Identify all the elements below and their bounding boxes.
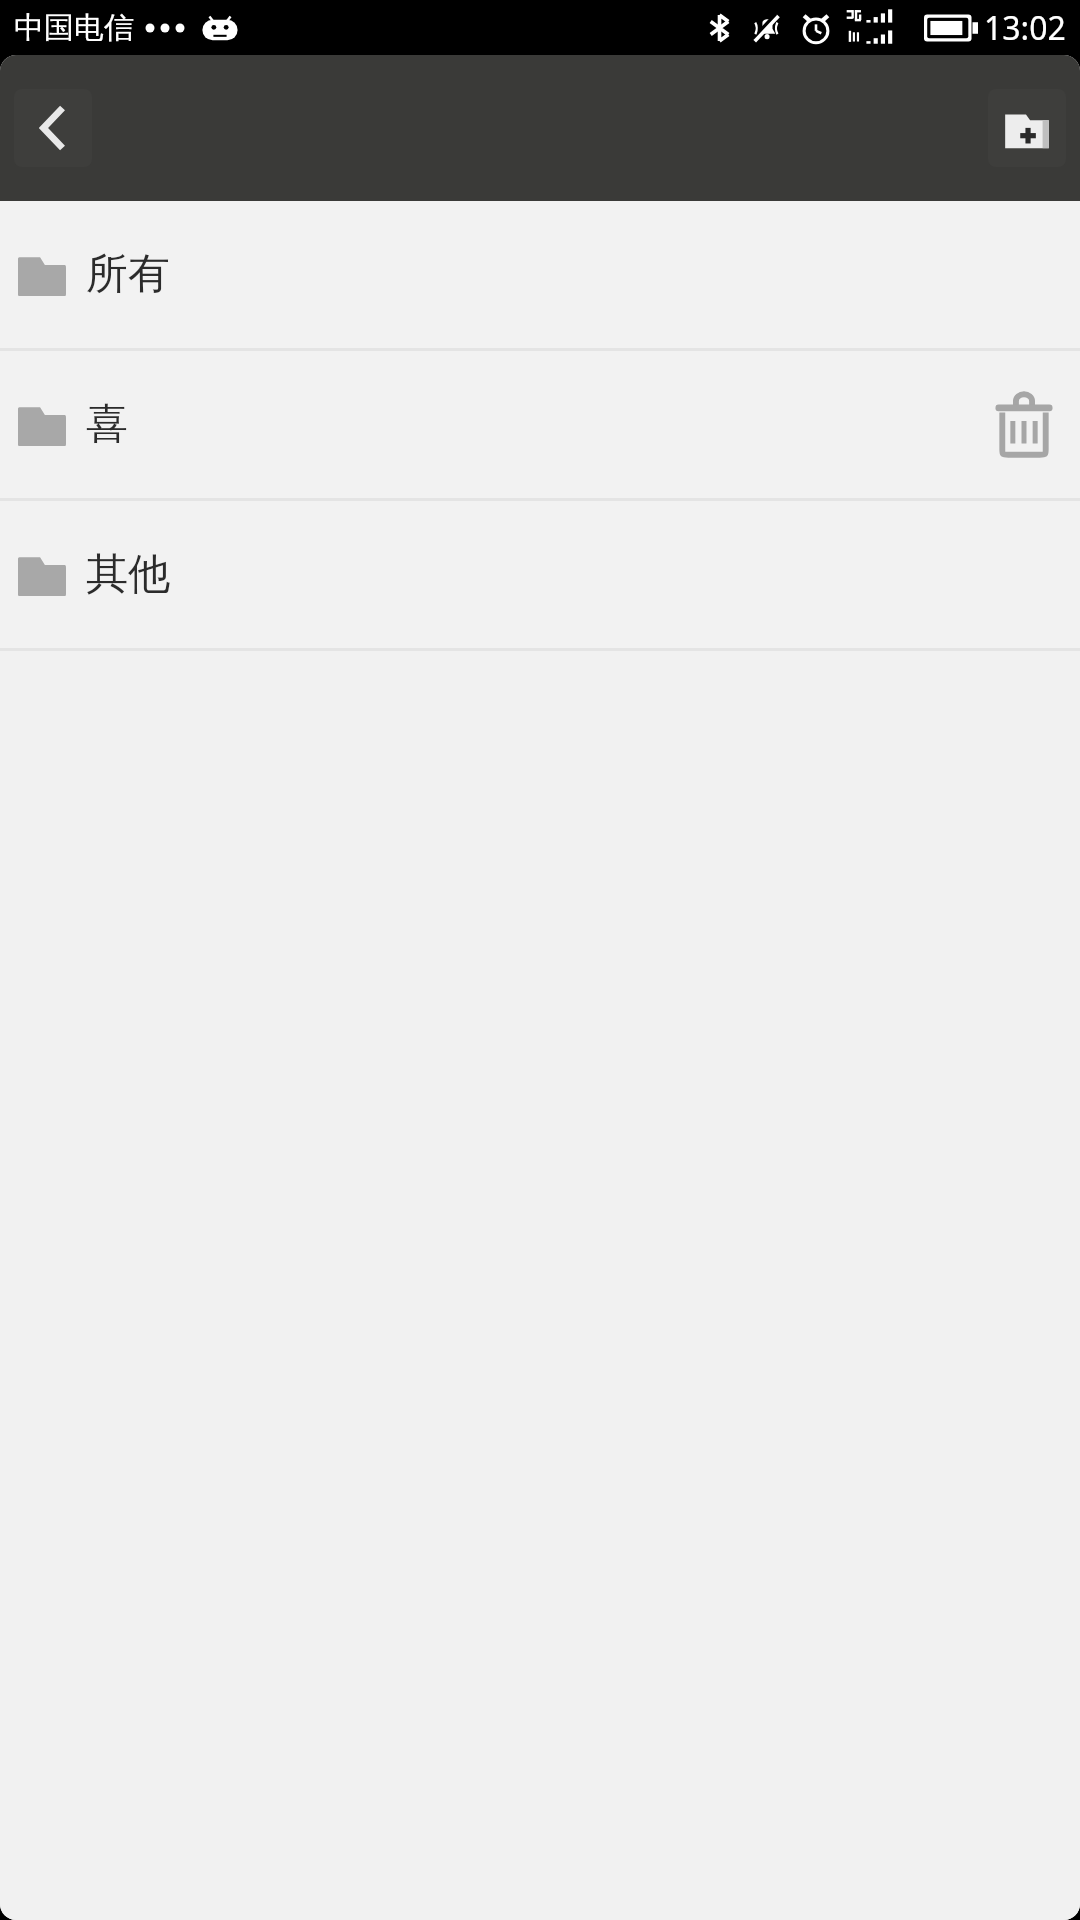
- staticText: 所有: [86, 248, 170, 301]
- button[interactable]: 喜: [0, 351, 1080, 498]
- staticText: 13:02: [984, 6, 1066, 50]
- button[interactable]: 其他: [0, 501, 1080, 648]
- staticText: 其他: [86, 548, 170, 601]
- staticText: 喜: [86, 398, 128, 451]
- button[interactable]: Delete: [988, 389, 1060, 461]
- button[interactable]: 所有: [0, 201, 1080, 348]
- button[interactable]: Back: [14, 89, 92, 167]
- staticText: 中国电信: [14, 9, 134, 47]
- button[interactable]: New folder: [988, 89, 1066, 167]
